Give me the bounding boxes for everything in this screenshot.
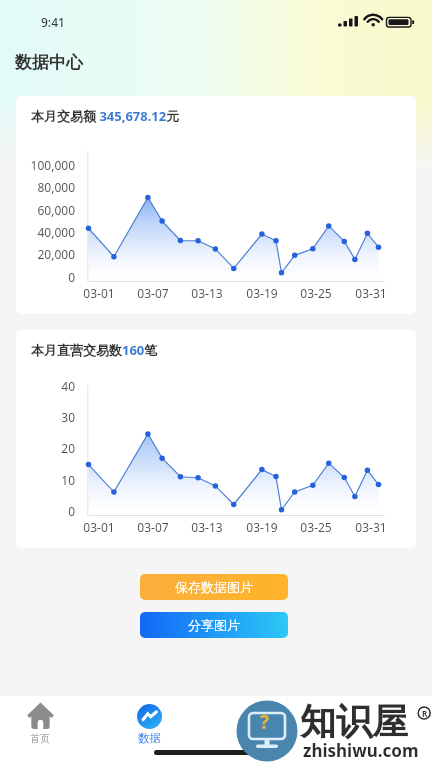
button[interactable]: 数据	[122, 704, 176, 745]
staticText: 40	[16, 378, 75, 394]
other: Registered trademark	[418, 707, 431, 720]
staticText: 保存数据图片	[175, 579, 253, 595]
staticText: 60,000	[16, 202, 75, 218]
staticText: 80,000	[16, 179, 75, 195]
staticText: zhishiwu.com	[303, 739, 419, 762]
staticText: 10	[16, 472, 75, 488]
staticText: 0	[16, 269, 75, 285]
button[interactable]: 分享图片	[140, 612, 288, 638]
staticText: 03-31	[349, 519, 393, 535]
staticText: 20	[16, 440, 75, 456]
staticText: 0	[16, 503, 75, 519]
staticText: 首页	[30, 732, 50, 745]
staticText: 分享图片	[188, 617, 240, 633]
staticText: 03-13	[185, 519, 229, 535]
staticText: 本月直营交易数160笔	[31, 341, 158, 359]
staticText: 03-31	[349, 285, 393, 301]
staticText: 03-19	[240, 519, 284, 535]
staticText: 数据中心	[15, 52, 83, 73]
staticText: 本月交易额 345,678.12元	[31, 107, 180, 125]
button[interactable]: 本月交易额 345,678.12元	[16, 96, 416, 314]
staticText: 数据	[138, 731, 161, 745]
staticText: 03-25	[294, 285, 338, 301]
staticText: 40,000	[16, 224, 75, 240]
button[interactable]: 保存数据图片	[140, 574, 288, 600]
staticText: 03-13	[185, 285, 229, 301]
staticText: 9:41	[41, 14, 65, 30]
staticText: 03-07	[131, 519, 175, 535]
staticText: 知识屋	[300, 699, 408, 744]
button[interactable]: 首页	[13, 702, 67, 745]
staticText: 03-01	[77, 519, 121, 535]
staticText: ?	[260, 709, 270, 735]
staticText: 03-01	[77, 285, 121, 301]
staticText: 20,000	[16, 246, 75, 262]
staticText: 100,000	[16, 157, 75, 173]
staticText: R	[422, 708, 428, 719]
staticText: 03-25	[294, 519, 338, 535]
staticText: 03-19	[240, 285, 284, 301]
button[interactable]: 本月直营交易数160笔	[16, 330, 416, 548]
staticText: 30	[16, 409, 75, 425]
staticText: 03-07	[131, 285, 175, 301]
